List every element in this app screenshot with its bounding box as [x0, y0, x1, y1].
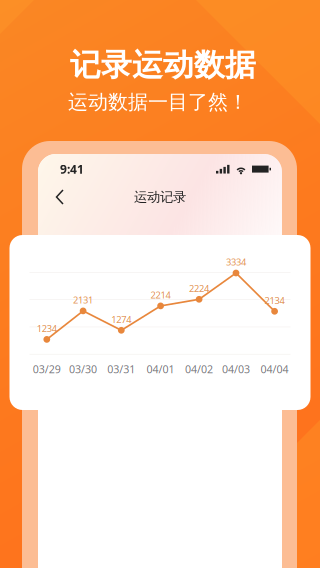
staticText: 运动记录 — [134, 189, 186, 205]
staticText: 运动数据一目了然！ — [68, 90, 248, 114]
staticText: 1274 — [111, 313, 131, 325]
staticText: 2134 — [265, 294, 285, 306]
staticText: 03/29 — [33, 362, 61, 376]
button[interactable]: Back — [50, 185, 74, 209]
staticText: 记录运动数据 — [70, 46, 256, 84]
staticText: 04/01 — [147, 362, 175, 376]
staticText: 03/31 — [107, 362, 135, 376]
staticText: 3334 — [226, 256, 246, 268]
staticText: 2214 — [151, 289, 171, 301]
staticText: 1234 — [37, 322, 57, 335]
staticText: 2224 — [189, 282, 209, 294]
staticText: 2131 — [73, 294, 93, 306]
staticText: 04/02 — [185, 362, 213, 376]
staticText: 03/30 — [69, 362, 97, 376]
staticText: 04/04 — [261, 362, 289, 376]
staticText: 04/03 — [222, 362, 250, 376]
staticText: 9:41 — [60, 161, 84, 177]
